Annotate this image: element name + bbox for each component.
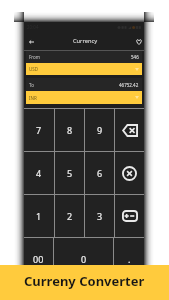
- staticText: 5: [67, 167, 73, 179]
- button[interactable]: 5: [55, 152, 84, 194]
- button[interactable]: From: [26, 51, 142, 63]
- staticText: 2: [67, 210, 73, 222]
- button[interactable]: 1: [24, 195, 54, 237]
- button[interactable]: To: [26, 78, 142, 91]
- staticText: 4: [36, 167, 42, 179]
- button[interactable]: Back: [26, 37, 36, 47]
- button[interactable]: INR: [26, 91, 142, 104]
- button[interactable]: 6: [85, 152, 114, 194]
- staticText: To: [29, 82, 34, 88]
- staticText: 0: [81, 253, 87, 265]
- button[interactable]: Backspace: [115, 109, 144, 151]
- staticText: 7: [36, 124, 42, 136]
- staticText: Currency: [73, 37, 98, 45]
- staticText: 9: [97, 124, 103, 136]
- button[interactable]: 4: [24, 152, 54, 194]
- staticText: 46752.42: [119, 82, 139, 88]
- button[interactable]: Clear: [115, 152, 144, 194]
- button[interactable]: Toggle sign: [115, 195, 144, 237]
- staticText: .: [128, 253, 131, 265]
- button[interactable]: 3: [85, 195, 114, 237]
- staticText: 1: [36, 210, 42, 222]
- staticText: Curreny Converter: [24, 272, 145, 290]
- staticText: 8: [67, 124, 73, 136]
- button[interactable]: 9: [85, 109, 114, 151]
- button[interactable]: USD: [26, 63, 142, 75]
- staticText: 546: [131, 54, 139, 60]
- staticText: From: [29, 54, 41, 60]
- button[interactable]: .: [114, 238, 144, 280]
- staticText: INR: [29, 95, 37, 101]
- staticText: 00: [33, 253, 44, 265]
- button[interactable]: 2: [55, 195, 84, 237]
- staticText: 6: [97, 167, 103, 179]
- button[interactable]: 8: [55, 109, 84, 151]
- staticText: 3: [97, 210, 103, 222]
- button[interactable]: 0: [54, 238, 113, 280]
- staticText: USD: [29, 66, 39, 72]
- button[interactable]: 00: [24, 238, 53, 280]
- button[interactable]: 7: [24, 109, 54, 151]
- button[interactable]: Favorite: [134, 37, 144, 47]
